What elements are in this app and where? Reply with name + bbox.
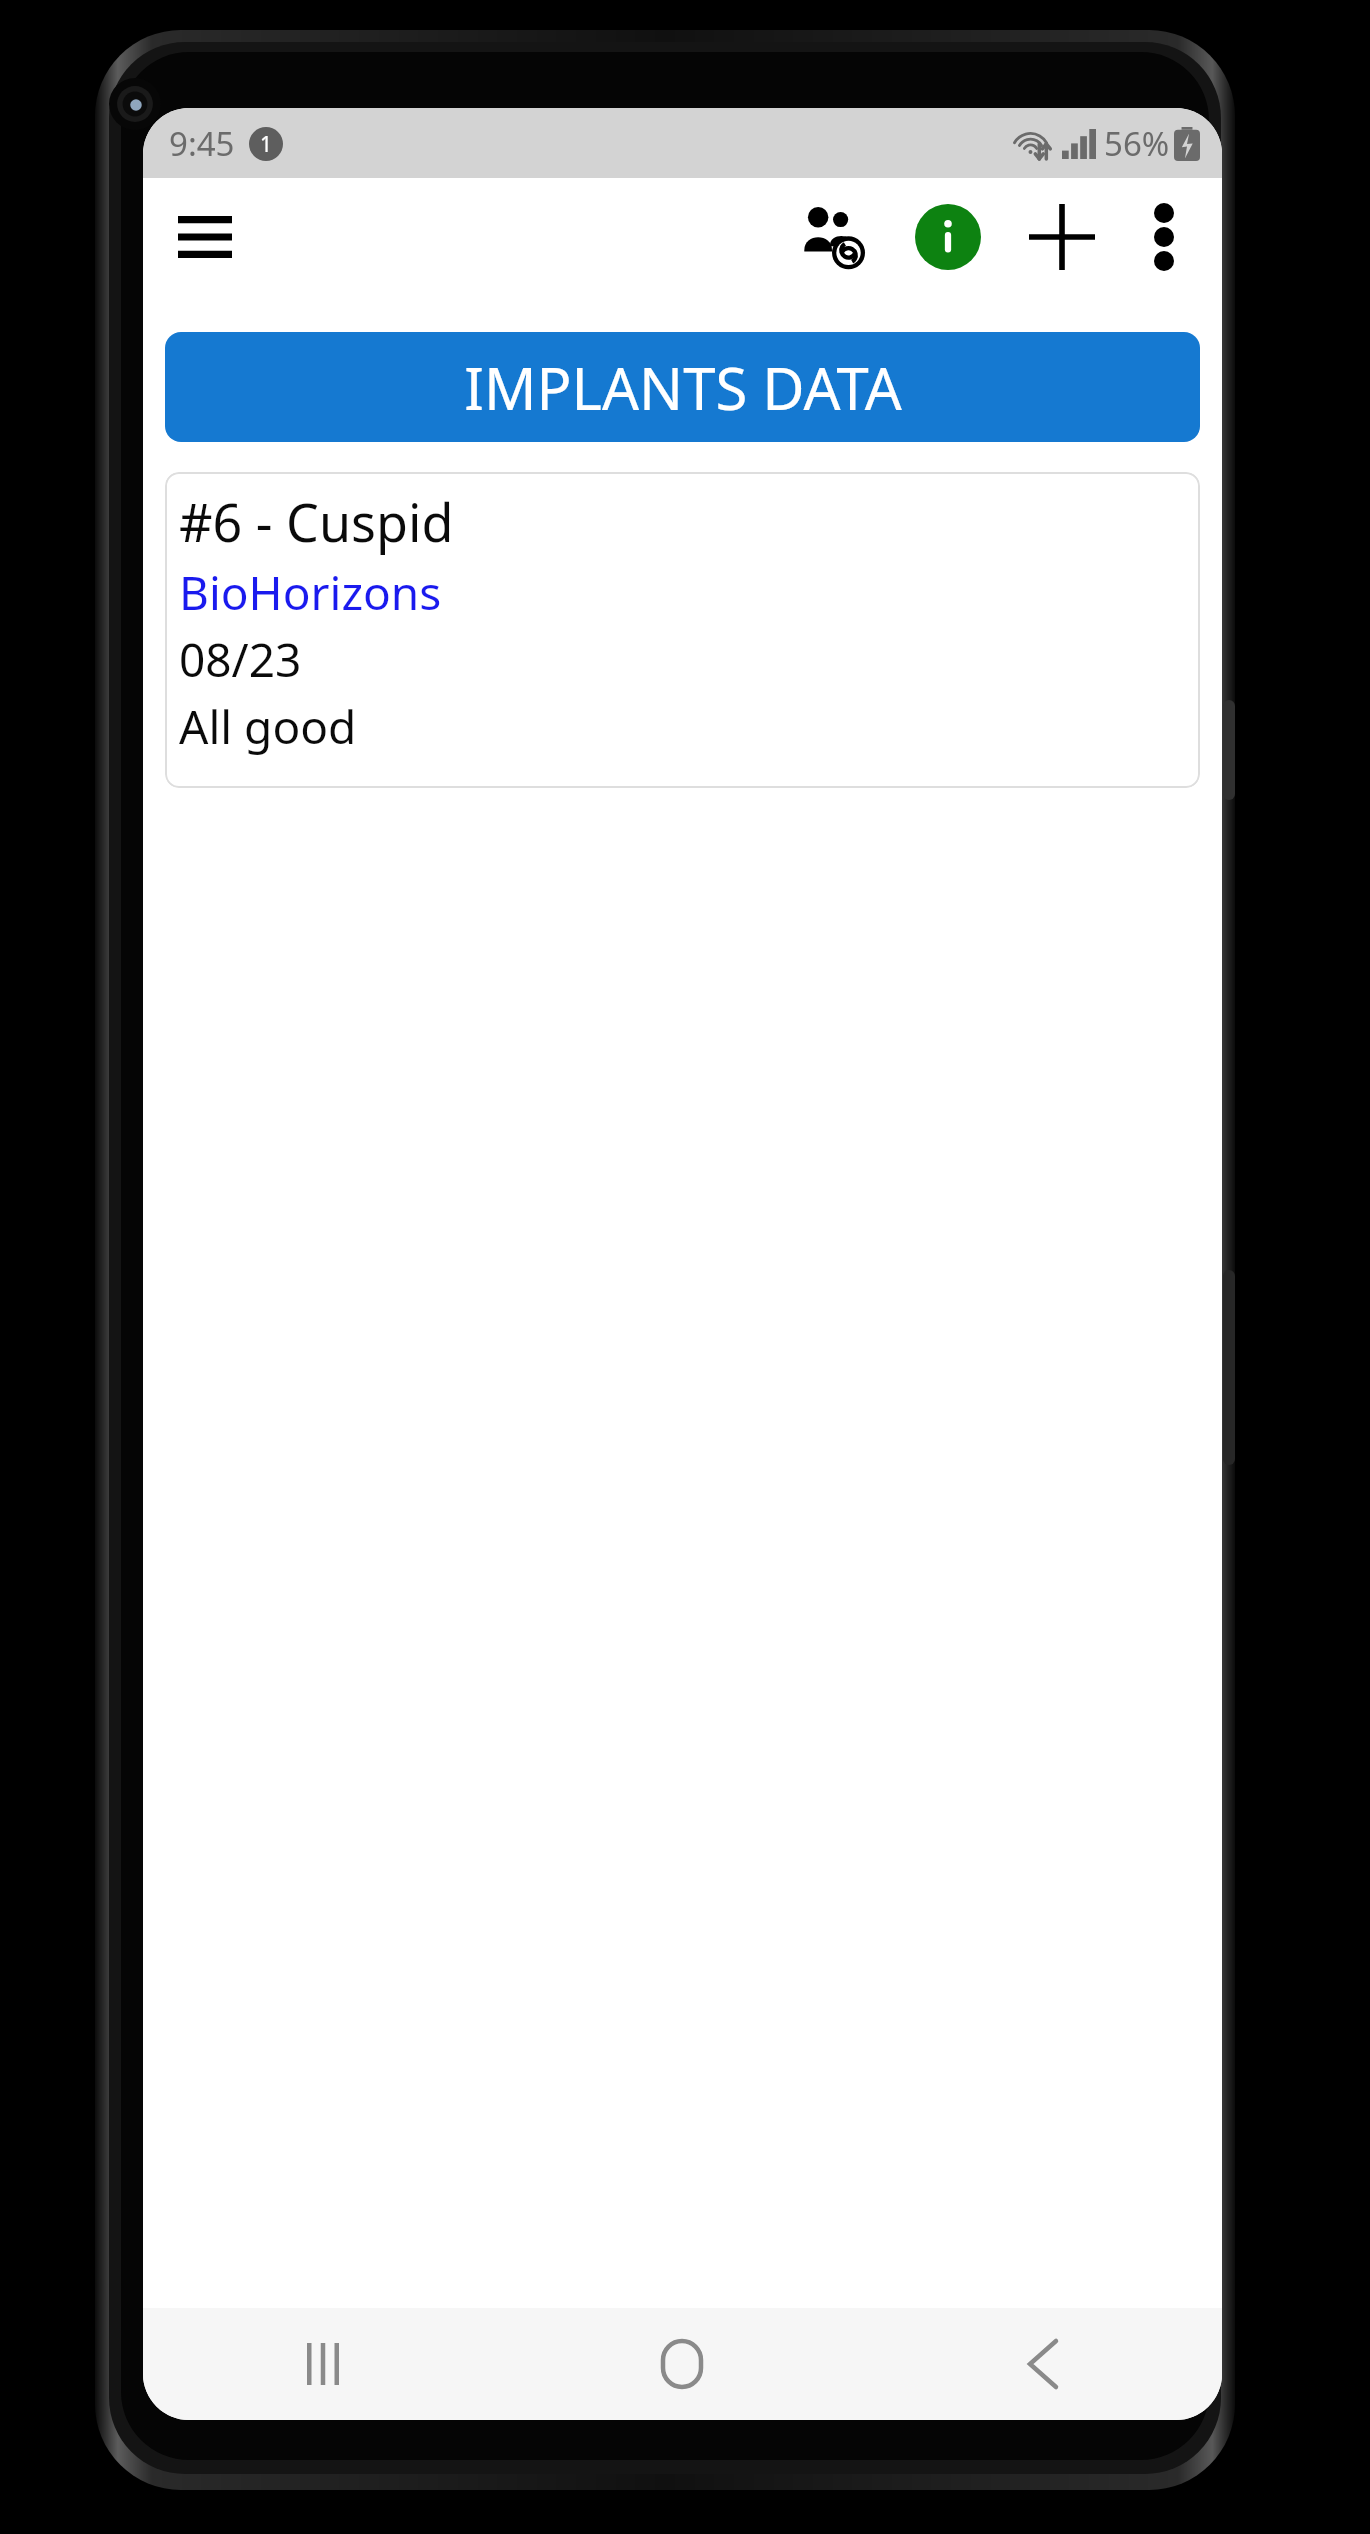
staticText: IMPLANTS DATA (464, 348, 902, 427)
button[interactable]: Information (896, 185, 1000, 289)
button[interactable]: More options (1116, 189, 1212, 285)
staticText: 08/23 (179, 628, 302, 691)
button[interactable]: Menu (161, 193, 249, 281)
staticText: 1 (260, 130, 273, 159)
staticText: #6 - Cuspid (179, 486, 454, 557)
button[interactable]: Home (502, 2308, 862, 2420)
button[interactable]: #6 - Cuspid (165, 472, 1200, 788)
button[interactable]: Back (862, 2308, 1222, 2420)
button[interactable]: Share patients (782, 185, 886, 289)
staticText: All good (179, 695, 357, 758)
button[interactable]: Add (1010, 185, 1114, 289)
staticText: 56% (1104, 121, 1170, 166)
staticText: BioHorizons (179, 561, 442, 624)
button[interactable]: Recent apps (143, 2308, 502, 2420)
button[interactable]: IMPLANTS DATA (165, 332, 1200, 442)
staticText: 9:45 (169, 121, 235, 166)
